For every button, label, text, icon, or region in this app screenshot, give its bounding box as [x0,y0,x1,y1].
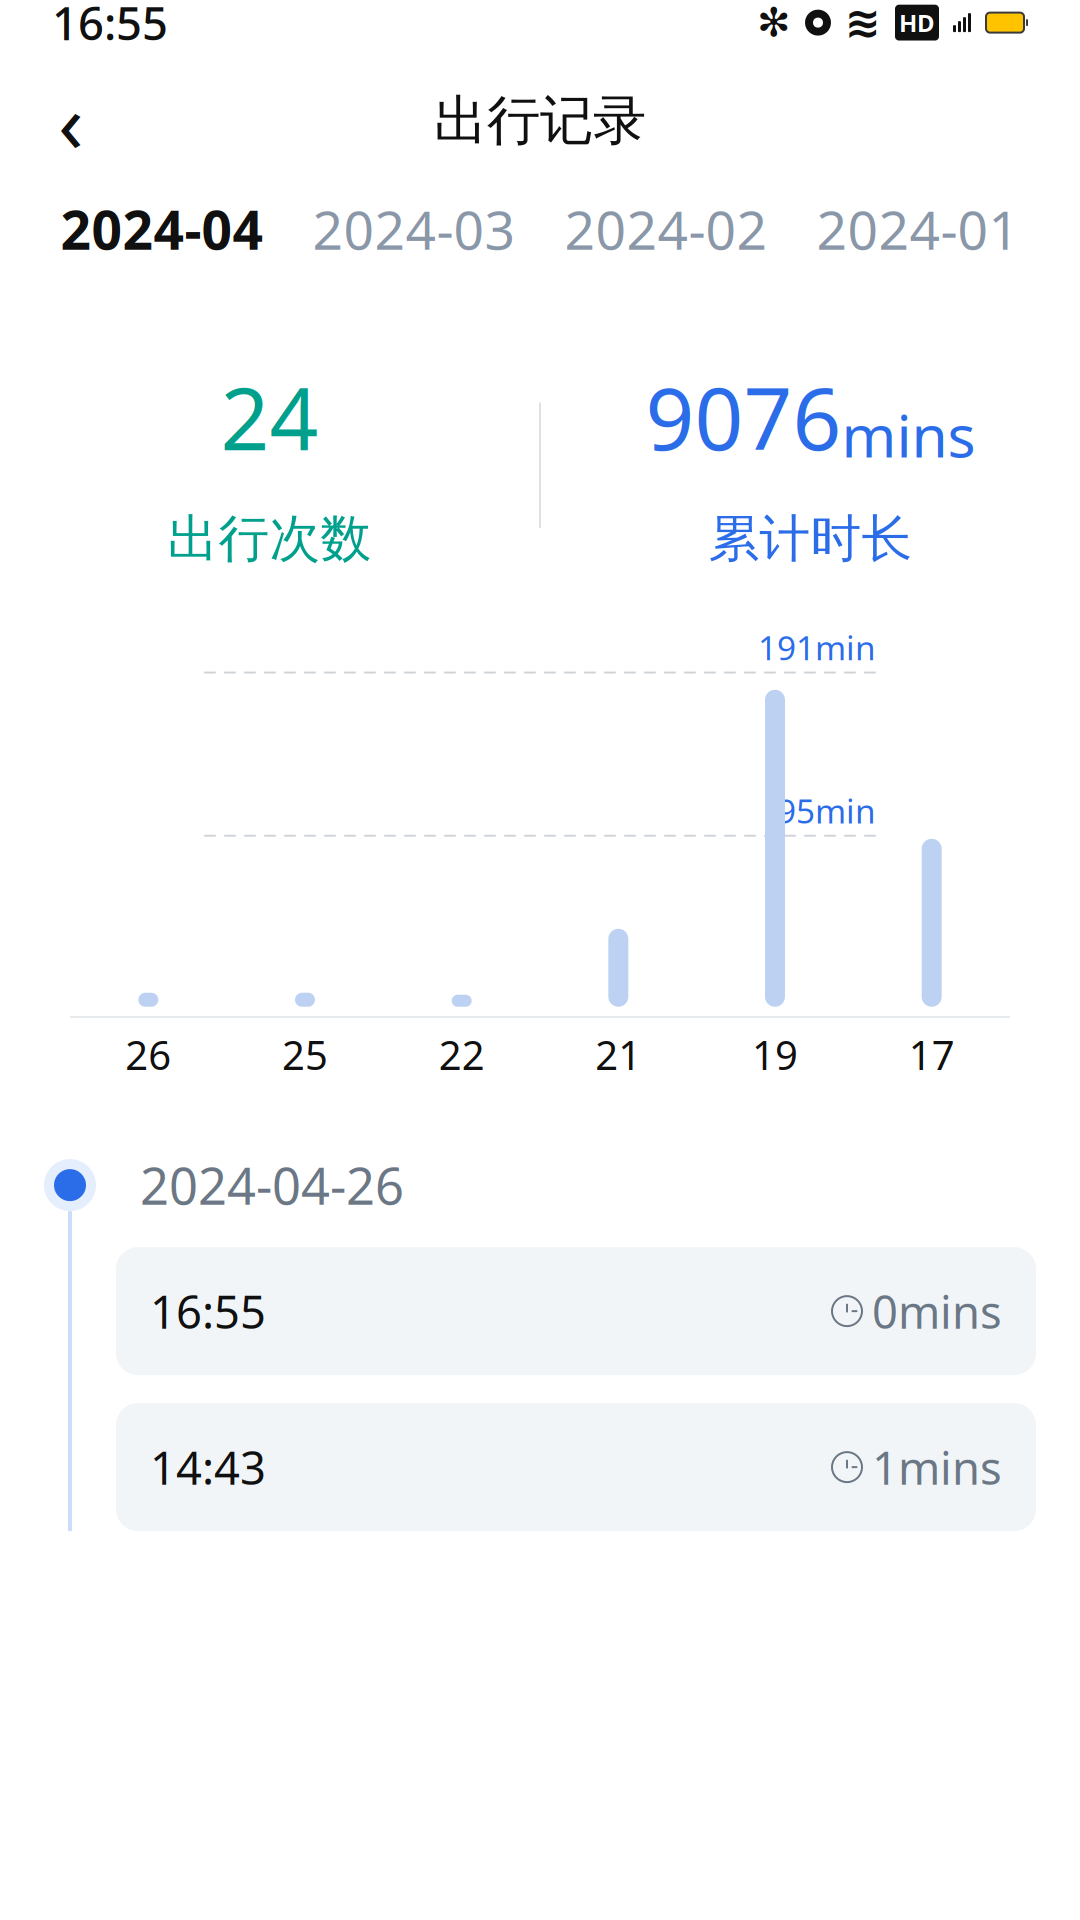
button[interactable]: 2024-01 [792,194,1044,264]
staticText: 95min [777,788,876,833]
button[interactable]: 2024-02 [540,194,792,264]
staticText: 出行次数 [167,508,371,570]
staticText: 0mins [872,1281,1002,1341]
staticText: 2024-02 [564,194,767,264]
staticText: 累计时长 [708,508,912,570]
staticText: 191min [758,625,876,669]
staticText: 1mins [872,1437,1002,1497]
button[interactable]: 2024-03 [288,194,540,264]
staticText: 出行记录 [434,88,646,153]
button[interactable]: Back [36,86,106,156]
staticText: 24 [220,360,318,474]
button[interactable]: 14:43 [116,1403,1036,1531]
staticText: 19 [752,1028,798,1081]
staticText: mins [841,396,975,474]
staticText: 21 [595,1028,641,1081]
button[interactable]: 2024-04 [36,194,288,264]
staticText: 2024-01 [816,194,1019,264]
staticText: 16:55 [150,1281,266,1341]
staticText: 26 [125,1028,171,1081]
staticText: 16:55 [52,0,168,53]
staticText: 9076 [645,360,841,474]
staticText: ≋ [845,0,881,47]
staticText: 2024-03 [312,194,515,264]
staticText: 17 [909,1028,955,1081]
staticText: 14:43 [150,1437,266,1497]
button[interactable]: 16:55 [116,1247,1036,1375]
staticText: ‹ [58,66,84,175]
staticText: 2024-04 [60,194,263,264]
staticText: HD [899,7,935,39]
staticText: 25 [282,1028,328,1081]
staticText: 2024-04-26 [140,1151,404,1219]
staticText: 22 [439,1028,485,1081]
staticText: ✻ [757,0,791,45]
